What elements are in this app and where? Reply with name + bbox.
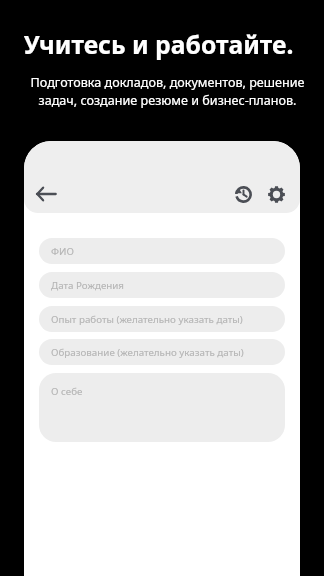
button[interactable]: Дата Рождения	[39, 272, 285, 298]
button[interactable]: Settings	[261, 179, 291, 209]
button[interactable]: Back	[29, 177, 63, 211]
button[interactable]: ФИО	[39, 238, 285, 264]
button[interactable]: О себе	[39, 373, 285, 442]
staticText: ФИО	[51, 245, 74, 258]
button[interactable]: Образование (желательно указать даты)	[39, 339, 285, 365]
staticText: Учитесь и работайте.	[8, 28, 309, 62]
button[interactable]: History	[228, 179, 258, 209]
staticText: Образование (желательно указать даты)	[51, 346, 244, 359]
staticText: Дата Рождения	[51, 279, 125, 292]
staticText: Подготовка докладов, документов, решение…	[27, 74, 308, 109]
staticText: О себе	[51, 385, 83, 398]
button[interactable]: Опыт работы (желательно указать даты)	[39, 306, 285, 332]
staticText: Опыт работы (желательно указать даты)	[51, 313, 243, 326]
